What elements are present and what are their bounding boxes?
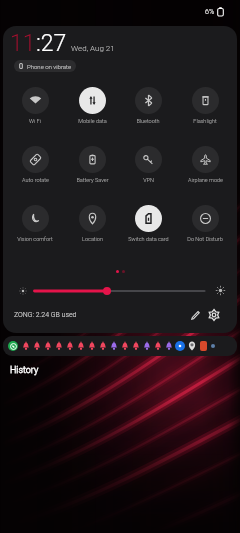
staticText: VPN <box>143 177 154 183</box>
button[interactable] <box>3 336 237 356</box>
staticText: Airplane mode <box>188 177 223 183</box>
button[interactable]: Wi Fi <box>8 87 62 124</box>
button[interactable]: Flashlight <box>178 87 232 124</box>
staticText: Auto rotate <box>22 177 49 183</box>
button[interactable]: Switch data card <box>121 205 175 242</box>
button[interactable]: Bluetooth <box>121 87 175 124</box>
staticText: Wed, Aug 21 <box>71 44 115 53</box>
staticText: Vision comfort <box>17 236 53 242</box>
staticText: History <box>10 365 39 376</box>
staticText: Phone on vibrate <box>27 63 72 70</box>
button[interactable]: Edit <box>186 306 204 324</box>
button[interactable]: Battery Saver <box>65 146 119 183</box>
button[interactable]: Vision comfort <box>8 205 62 242</box>
staticText: ZONG: 2.24 GB used <box>14 311 77 319</box>
button[interactable]: Phone on vibrate <box>14 60 76 72</box>
staticText: 6% <box>205 8 215 16</box>
button[interactable]: Auto rotate <box>8 146 62 183</box>
staticText: 11 <box>10 30 36 57</box>
button[interactable]: VPN <box>121 146 175 183</box>
button[interactable] <box>33 284 206 298</box>
staticText: Do Not Disturb <box>187 236 223 242</box>
button[interactable]: Settings <box>205 306 223 324</box>
staticText: Switch data card <box>128 236 169 242</box>
staticText: Flashlight <box>193 118 217 124</box>
button[interactable]: Do Not Disturb <box>178 205 232 242</box>
button[interactable]: Mobile data <box>65 87 119 124</box>
staticText: Mobile data <box>78 118 107 124</box>
button[interactable]: Airplane mode <box>178 146 232 183</box>
staticText: Wi Fi <box>29 118 41 124</box>
staticText: Location <box>82 236 103 242</box>
staticText: Battery Saver <box>76 177 109 183</box>
staticText: :27 <box>36 30 67 57</box>
staticText: Bluetooth <box>136 118 160 124</box>
button[interactable]: Location <box>65 205 119 242</box>
